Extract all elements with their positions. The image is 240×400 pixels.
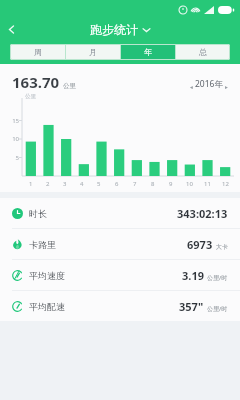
- staticText: 平均速度: [29, 270, 65, 281]
- staticText: 8: [151, 180, 155, 188]
- staticText: 4: [80, 180, 84, 188]
- staticText: 3: [63, 180, 67, 188]
- staticText: 12: [222, 180, 229, 188]
- staticText: 11: [204, 180, 211, 188]
- staticText: 6973: [187, 237, 213, 252]
- staticText: 163.70: [12, 72, 60, 92]
- staticText: ◂: [190, 84, 193, 90]
- staticText: ▸: [225, 84, 228, 90]
- staticText: 1: [29, 180, 33, 188]
- button[interactable]: 卡路里: [0, 229, 240, 259]
- staticText: 公里/时: [207, 305, 228, 313]
- staticText: 公里: [25, 93, 36, 100]
- button[interactable]: 月: [66, 44, 120, 60]
- staticText: 2016年: [195, 78, 223, 90]
- staticText: 5: [97, 180, 101, 188]
- staticText: 总: [199, 47, 207, 57]
- staticText: 3.19: [182, 268, 204, 283]
- staticText: 10: [186, 180, 193, 188]
- staticText: 周: [34, 47, 42, 57]
- button[interactable]: ◂: [190, 78, 228, 92]
- staticText: 公里: [63, 82, 76, 90]
- button[interactable]: 跑步统计: [90, 22, 151, 37]
- staticText: 357": [179, 299, 204, 314]
- staticText: 9: [169, 180, 173, 188]
- staticText: 卡路里: [29, 239, 56, 250]
- staticText: 5: [4, 154, 19, 162]
- staticText: 大卡: [216, 243, 228, 251]
- staticText: 年: [144, 47, 152, 57]
- staticText: 343:02:13: [177, 206, 228, 221]
- staticText: 7: [133, 180, 137, 188]
- staticText: 时长: [29, 208, 47, 219]
- staticText: 跑步统计: [90, 22, 138, 37]
- staticText: 月: [89, 47, 97, 57]
- button[interactable]: 平均速度: [0, 260, 240, 290]
- staticText: 15: [4, 117, 19, 125]
- staticText: 公里/时: [207, 274, 228, 282]
- staticText: 2: [46, 180, 50, 188]
- button[interactable]: 周: [10, 44, 65, 60]
- button[interactable]: 时长: [0, 198, 240, 228]
- button[interactable]: 平均配速: [0, 291, 240, 321]
- button[interactable]: 年: [121, 44, 175, 60]
- staticText: 10: [4, 135, 19, 143]
- button[interactable]: Back: [0, 18, 22, 40]
- staticText: 6: [115, 180, 119, 188]
- button[interactable]: 总: [176, 44, 230, 60]
- staticText: 平均配速: [29, 301, 65, 312]
